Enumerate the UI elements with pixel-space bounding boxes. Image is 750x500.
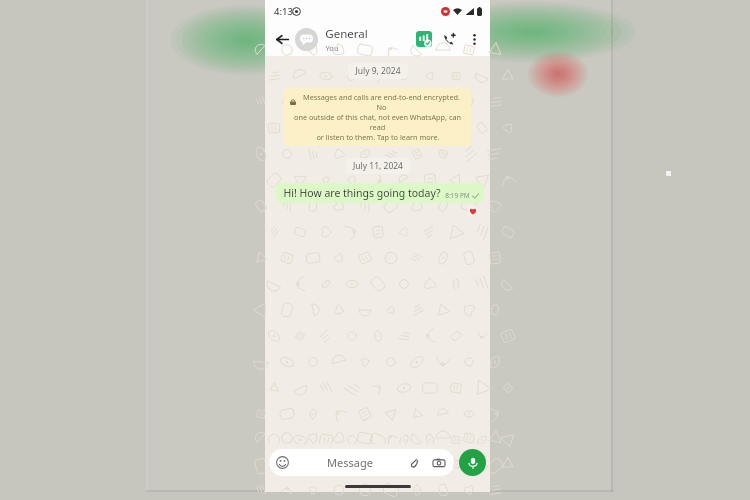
staticText: Hi! How are things going today?: [283, 186, 441, 200]
button[interactable]: Business catalog: [414, 29, 434, 49]
button[interactable]: Back: [271, 28, 293, 50]
staticText: You: [325, 43, 339, 53]
staticText: July 9, 2024: [355, 65, 401, 77]
staticText: or listen to them. Tap to learn more.: [316, 132, 440, 142]
button[interactable]: Camera: [430, 454, 447, 471]
staticText: Messages and calls are end-to-end encryp…: [298, 92, 465, 112]
button[interactable]: Attach: [405, 454, 422, 471]
button[interactable]: Heart reaction: [467, 205, 478, 216]
button[interactable]: Hi! How are things going today?: [276, 183, 484, 203]
staticText: one outside of this chat, not even Whats…: [290, 112, 465, 132]
button[interactable]: General: [325, 26, 414, 53]
button[interactable]: More options: [464, 29, 484, 49]
button[interactable]: Message: [269, 449, 454, 476]
button[interactable]: Messages and calls are end-to-end encryp…: [284, 88, 471, 146]
staticText: July 11, 2024: [353, 160, 403, 172]
button[interactable]: Record voice message: [459, 449, 486, 476]
staticText: 8:19 PM: [445, 191, 470, 200]
staticText: 4:13: [274, 5, 293, 18]
button[interactable]: Add call participant: [440, 29, 460, 49]
staticText: General: [325, 26, 368, 42]
staticText: Message: [295, 455, 405, 470]
button[interactable]: Group photo: [295, 28, 318, 51]
